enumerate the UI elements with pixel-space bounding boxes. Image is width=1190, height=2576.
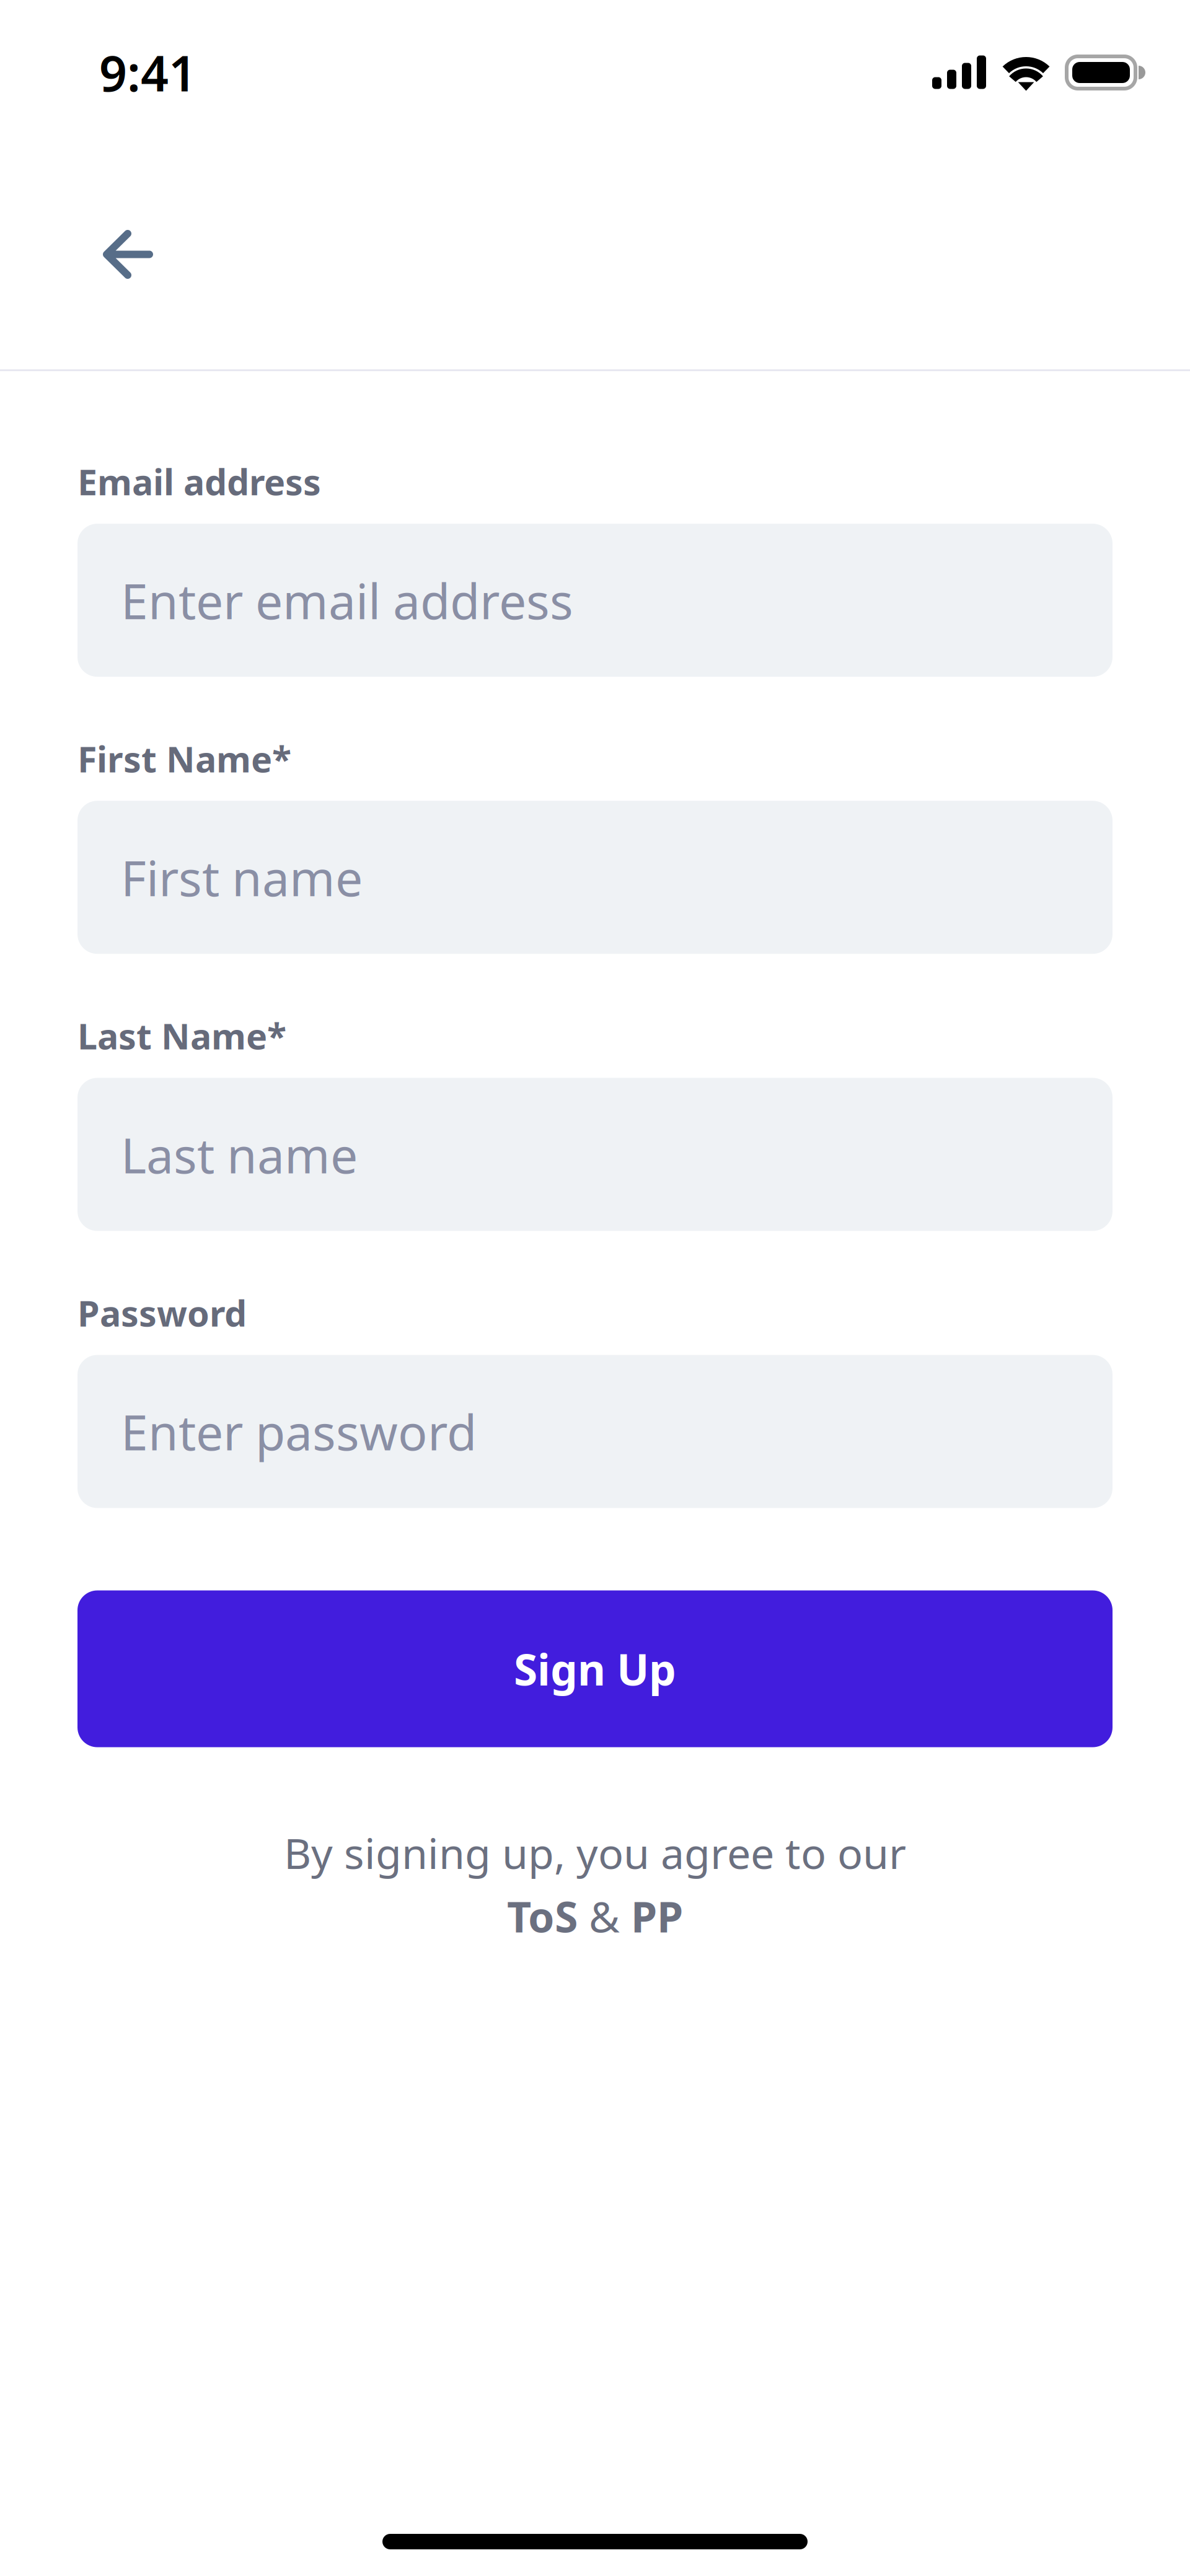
staticText: Last Name* [77, 1012, 286, 1059]
staticText: Enter password [121, 1399, 477, 1464]
staticText: ToS & PP [507, 1888, 683, 1944]
staticText: Sign Up [514, 1640, 676, 1697]
staticText: Enter email address [121, 568, 573, 633]
staticText: Last name [121, 1122, 358, 1187]
staticText: First name [121, 845, 363, 910]
staticText: By signing up, you agree to our [284, 1825, 906, 1881]
staticText: 9:41 [99, 40, 196, 105]
staticText: Password [77, 1289, 247, 1336]
staticText: Email address [77, 458, 321, 505]
button[interactable]: First name [77, 801, 1113, 954]
button[interactable]: Enter password [77, 1355, 1113, 1508]
button[interactable]: Sign Up [77, 1590, 1113, 1747]
button[interactable]: Last name [77, 1078, 1113, 1231]
staticText: First Name* [77, 735, 291, 782]
button[interactable]: Back [84, 211, 172, 297]
button[interactable]: ToS & PP [507, 1888, 683, 1944]
button[interactable]: Enter email address [77, 524, 1113, 677]
